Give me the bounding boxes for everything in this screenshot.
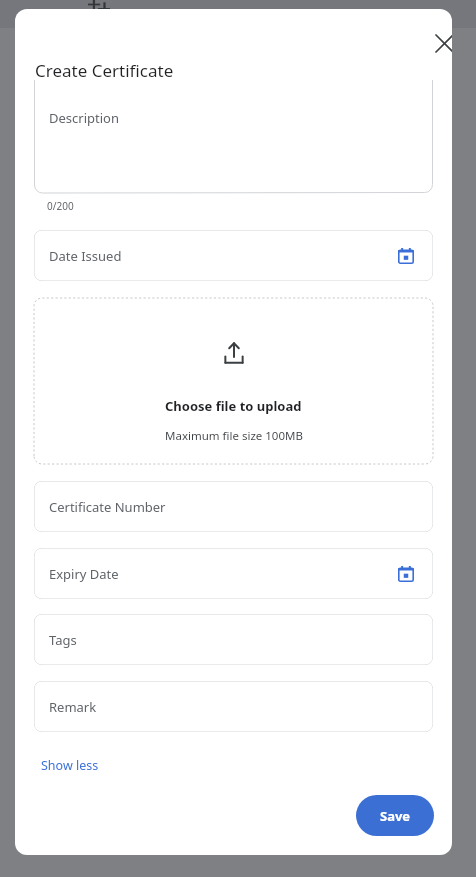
staticText: Create Certificate — [35, 59, 174, 82]
button[interactable]: Date Issued — [34, 230, 433, 281]
staticText: Choose file to upload — [165, 397, 302, 415]
staticText: Expiry Date — [49, 565, 393, 583]
button[interactable]: Close — [424, 23, 452, 63]
button[interactable]: Pick date — [393, 561, 419, 587]
staticText: Certificate Number — [49, 498, 419, 516]
staticText: Date Issued — [49, 247, 393, 265]
button[interactable]: Save — [356, 795, 434, 836]
staticText: Show less — [41, 757, 99, 774]
staticText: Remark — [49, 698, 419, 716]
staticText: Maximum file size 100MB — [165, 428, 303, 444]
button[interactable]: Certificate Number — [34, 481, 433, 532]
button[interactable]: Pick date — [393, 243, 419, 269]
button[interactable]: Show less — [41, 757, 99, 774]
staticText: Description — [49, 109, 119, 127]
button[interactable]: Remark — [34, 681, 433, 732]
button[interactable]: Choose file to upload — [34, 298, 433, 464]
button[interactable]: Tags — [34, 614, 433, 665]
button[interactable]: Description — [34, 88, 433, 193]
staticText: Tags — [49, 631, 419, 649]
staticText: 0/200 — [47, 199, 74, 213]
button[interactable]: Expiry Date — [34, 548, 433, 599]
staticText: Save — [380, 807, 411, 825]
